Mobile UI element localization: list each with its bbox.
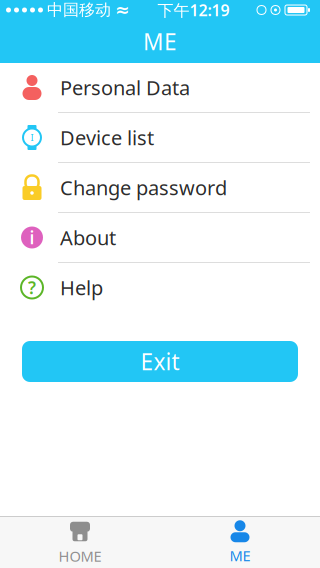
staticText: ≈ — [115, 0, 130, 20]
staticText: ME — [143, 26, 177, 56]
button[interactable]: Exit — [22, 341, 298, 382]
staticText: ME — [229, 546, 250, 565]
button[interactable]: ME — [160, 517, 320, 568]
staticText: Help — [60, 274, 103, 301]
staticText: Exit — [140, 346, 179, 376]
staticText: I — [30, 131, 33, 144]
staticText: Device list — [60, 124, 154, 151]
staticText: 下午12:19 — [157, 0, 229, 21]
button[interactable]: I — [0, 113, 320, 163]
staticText: About — [60, 224, 116, 251]
button[interactable]: Personal Data — [0, 63, 320, 113]
staticText: ? — [28, 276, 36, 299]
staticText: HOME — [58, 546, 101, 566]
staticText: Change password — [60, 174, 227, 201]
staticText: Personal Data — [60, 74, 190, 101]
button[interactable]: Change password — [0, 163, 320, 213]
button[interactable]: ? — [0, 263, 320, 313]
staticText: i — [29, 226, 34, 249]
button[interactable]: HOME — [0, 517, 160, 568]
button[interactable]: i — [0, 213, 320, 263]
staticText: 中国移动 — [47, 0, 111, 20]
